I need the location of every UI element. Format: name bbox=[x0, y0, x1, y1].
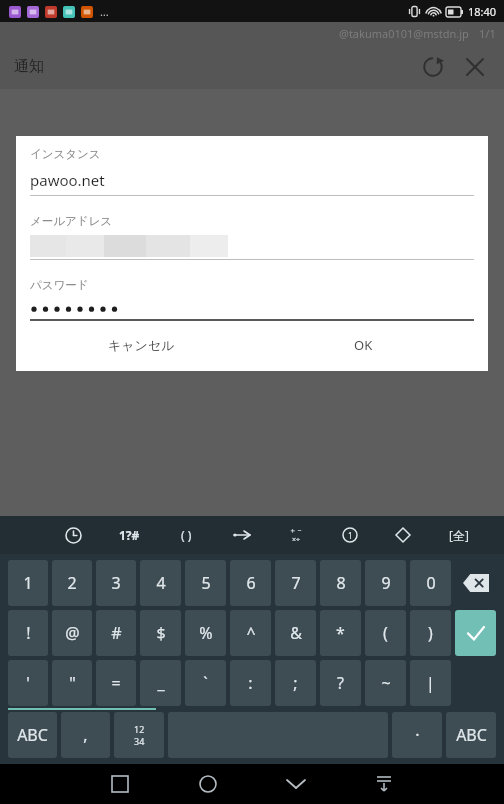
button[interactable]: Switch keyboard bbox=[354, 764, 414, 804]
staticText: 8 bbox=[336, 572, 346, 594]
button[interactable]: ( ) bbox=[169, 520, 203, 550]
staticText: メールアドレス bbox=[30, 214, 113, 228]
staticText: _ bbox=[157, 672, 165, 694]
button[interactable]: | bbox=[410, 660, 451, 706]
button[interactable]: ' bbox=[8, 660, 48, 706]
button[interactable]: History bbox=[58, 520, 88, 550]
button[interactable]: Circled number bbox=[335, 520, 365, 550]
staticText: 4 bbox=[156, 572, 166, 594]
staticText: パスワード bbox=[30, 278, 89, 292]
button[interactable]: [全] bbox=[442, 520, 476, 550]
staticText: ; bbox=[293, 672, 298, 694]
button[interactable]: @ bbox=[52, 610, 92, 656]
button[interactable]: : bbox=[230, 660, 271, 706]
staticText: : bbox=[248, 672, 253, 694]
button[interactable]: 6 bbox=[230, 560, 271, 606]
staticText: ~ bbox=[381, 672, 391, 694]
staticText: OK bbox=[354, 336, 373, 354]
staticText: 1 bbox=[23, 572, 33, 594]
staticText: ? bbox=[337, 672, 344, 694]
staticText: ( bbox=[383, 622, 388, 644]
staticText: | bbox=[426, 672, 435, 694]
button[interactable]: ! bbox=[8, 610, 48, 656]
button[interactable]: · bbox=[392, 712, 442, 758]
staticText: ) bbox=[428, 622, 433, 644]
button[interactable]: * bbox=[320, 610, 361, 656]
button[interactable]: 4 bbox=[140, 560, 181, 606]
staticText: # bbox=[111, 622, 122, 644]
staticText: " bbox=[69, 672, 76, 694]
button[interactable]: OK bbox=[252, 323, 474, 367]
button[interactable]: 3 bbox=[96, 560, 136, 606]
button[interactable]: ) bbox=[410, 610, 451, 656]
button[interactable]: Hide keyboard bbox=[266, 764, 326, 804]
staticText: ABC bbox=[456, 724, 487, 746]
staticText: 7 bbox=[291, 572, 301, 594]
staticText: = bbox=[111, 672, 121, 694]
button[interactable]: ( bbox=[365, 610, 406, 656]
staticText: @ bbox=[65, 622, 80, 644]
button[interactable]: ? bbox=[320, 660, 361, 706]
staticText: [全] bbox=[449, 527, 469, 543]
button[interactable]: & bbox=[275, 610, 316, 656]
staticText: ( ) bbox=[181, 527, 192, 543]
button[interactable]: Enter bbox=[455, 610, 496, 656]
staticText: ^ bbox=[246, 622, 256, 644]
staticText: · bbox=[415, 724, 420, 746]
staticText: @takuma0101@mstdn.jp bbox=[339, 26, 469, 41]
button[interactable]: # bbox=[96, 610, 136, 656]
button[interactable]: 5 bbox=[185, 560, 226, 606]
button[interactable]: Shapes bbox=[388, 520, 418, 550]
button[interactable]: $ bbox=[140, 610, 181, 656]
staticText: 1 bbox=[348, 530, 353, 541]
staticText: 5 bbox=[201, 572, 211, 594]
button[interactable]: % bbox=[185, 610, 226, 656]
button[interactable]: 7 bbox=[275, 560, 316, 606]
staticText: 18:40 bbox=[468, 4, 497, 19]
staticText: , bbox=[83, 724, 88, 746]
staticText: 通知 bbox=[14, 57, 44, 76]
button[interactable]: 1 bbox=[8, 560, 48, 606]
button[interactable]: ~ bbox=[365, 660, 406, 706]
staticText: 1/1 bbox=[479, 26, 496, 41]
button[interactable]: Arrow bbox=[227, 520, 257, 550]
staticText: * bbox=[336, 622, 345, 644]
button[interactable]: キャンセル bbox=[30, 323, 252, 367]
staticText: ' bbox=[26, 672, 30, 694]
button[interactable]: 9 bbox=[365, 560, 406, 606]
staticText: ABC bbox=[17, 724, 48, 746]
button[interactable]: ` bbox=[185, 660, 226, 706]
button[interactable]: Home bbox=[178, 764, 238, 804]
staticText: 34 bbox=[134, 735, 145, 747]
staticText: & bbox=[290, 622, 302, 644]
button[interactable]: ABC bbox=[446, 712, 496, 758]
button[interactable]: 2 bbox=[52, 560, 92, 606]
staticText: 12 bbox=[134, 723, 145, 735]
button[interactable]: " bbox=[52, 660, 92, 706]
button[interactable]: 8 bbox=[320, 560, 361, 606]
button[interactable]: Recents bbox=[90, 764, 150, 804]
staticText: ! bbox=[26, 622, 31, 644]
button[interactable]: Backspace bbox=[455, 560, 496, 606]
button[interactable]: 1?# bbox=[112, 520, 146, 550]
button[interactable]: , bbox=[61, 712, 110, 758]
button[interactable]: Close bbox=[454, 46, 496, 88]
button[interactable]: Refresh bbox=[412, 46, 454, 88]
staticText: $ bbox=[156, 622, 166, 644]
staticText: ＋－ bbox=[289, 526, 303, 535]
button[interactable]: _ bbox=[140, 660, 181, 706]
button[interactable]: = bbox=[96, 660, 136, 706]
button[interactable]: 12 bbox=[114, 712, 164, 758]
staticText: 1?# bbox=[119, 527, 140, 543]
staticText: ` bbox=[203, 672, 208, 694]
button[interactable]: ; bbox=[275, 660, 316, 706]
staticText: 2 bbox=[67, 572, 77, 594]
button[interactable]: ^ bbox=[230, 610, 271, 656]
staticText: キャンセル bbox=[108, 337, 175, 353]
button[interactable]: 0 bbox=[410, 560, 451, 606]
button[interactable]: ABC bbox=[8, 712, 57, 758]
staticText: 6 bbox=[246, 572, 256, 594]
button[interactable]: Math symbols bbox=[281, 520, 311, 550]
